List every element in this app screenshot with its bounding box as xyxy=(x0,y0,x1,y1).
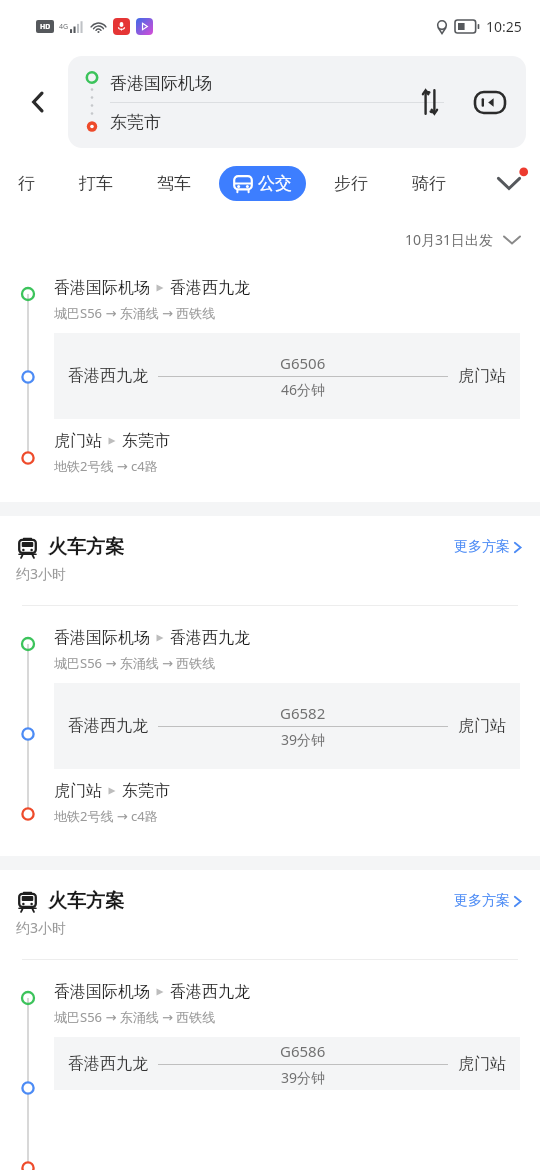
staticText: 香港西九龙 xyxy=(170,628,250,648)
staticText: 46分钟 xyxy=(281,380,326,399)
staticText: 虎门站 xyxy=(458,366,506,386)
staticText: 城巴S56 → 东涌线 → 西铁线 xyxy=(54,304,216,322)
staticText: 香港西九龙 xyxy=(170,982,250,1002)
staticText: 香港国际机场 xyxy=(54,278,150,298)
staticText: 火车方案 xyxy=(48,535,124,559)
button[interactable]: 香港国际机场 xyxy=(110,64,526,102)
staticText: 香港西九龙 xyxy=(170,278,250,298)
button[interactable]: 更多方案 xyxy=(450,888,526,914)
staticText: 更多方案 xyxy=(454,538,510,556)
staticText: 东莞市 xyxy=(110,112,161,133)
staticText: 4G xyxy=(59,22,69,32)
button[interactable]: 行 xyxy=(10,166,43,201)
button[interactable]: 火车方案 xyxy=(0,870,540,960)
staticText: 城巴S56 → 东涌线 → 西铁线 xyxy=(54,1008,216,1026)
staticText: 香港国际机场 xyxy=(54,982,150,1002)
staticText: 地铁2号线 → c4路 xyxy=(54,457,158,475)
staticText: HD xyxy=(40,22,51,32)
staticText: 城巴S56 → 东涌线 → 西铁线 xyxy=(54,654,216,672)
button[interactable]: 香港国际机场 xyxy=(0,606,540,856)
button[interactable]: 香港国际机场 xyxy=(0,264,540,502)
button[interactable]: 打车 xyxy=(71,166,121,201)
staticText: 约3小时 xyxy=(16,918,67,937)
staticText: 打车 xyxy=(79,173,113,194)
button[interactable]: 东莞市 xyxy=(110,103,526,141)
staticText: 香港国际机场 xyxy=(54,628,150,648)
staticText: 约3小时 xyxy=(16,564,67,583)
staticText: 步行 xyxy=(334,173,368,194)
staticText: 香港西九龙 xyxy=(68,1054,148,1074)
staticText: 地铁2号线 → c4路 xyxy=(54,807,158,825)
staticText: 公交 xyxy=(258,173,292,194)
button[interactable]: Back xyxy=(14,78,62,126)
button[interactable]: 香港国际机场 xyxy=(0,960,540,1090)
staticText: 虎门站 xyxy=(54,431,102,451)
button[interactable]: Swap origin and destination xyxy=(408,80,452,124)
button[interactable]: Expand travel modes xyxy=(486,160,532,206)
staticText: G6586 xyxy=(280,1041,326,1061)
staticText: 10月31日出发 xyxy=(405,230,494,249)
button[interactable]: Transit card xyxy=(468,80,512,124)
staticText: 行 xyxy=(18,173,35,194)
staticText: 香港西九龙 xyxy=(68,366,148,386)
staticText: 39分钟 xyxy=(281,730,326,749)
button[interactable]: 更多方案 xyxy=(450,534,526,560)
button[interactable]: 10月31日出发 xyxy=(399,224,526,255)
staticText: 虎门站 xyxy=(458,1054,506,1074)
staticText: 虎门站 xyxy=(54,781,102,801)
staticText: 香港国际机场 xyxy=(110,73,212,94)
staticText: 香港西九龙 xyxy=(68,716,148,736)
staticText: 虎门站 xyxy=(458,716,506,736)
button[interactable]: 驾车 xyxy=(149,166,199,201)
staticText: 东莞市 xyxy=(122,781,170,801)
button[interactable]: 步行 xyxy=(326,166,376,201)
button[interactable]: 公交 xyxy=(219,166,306,201)
staticText: 39分钟 xyxy=(281,1068,326,1087)
staticText: 火车方案 xyxy=(48,889,124,913)
staticText: 东莞市 xyxy=(122,431,170,451)
button[interactable]: 骑行 xyxy=(404,166,454,201)
staticText: 骑行 xyxy=(412,173,446,194)
staticText: 更多方案 xyxy=(454,892,510,910)
staticText: G6582 xyxy=(280,703,326,723)
staticText: G6506 xyxy=(280,353,326,373)
button[interactable]: 火车方案 xyxy=(0,516,540,606)
staticText: 驾车 xyxy=(157,173,191,194)
staticText: 10:25 xyxy=(486,17,522,36)
